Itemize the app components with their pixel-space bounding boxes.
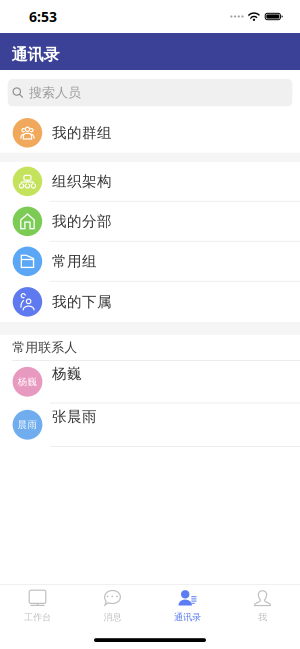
staticText: 常用联系人 xyxy=(12,339,77,356)
button[interactable]: 晨雨 xyxy=(0,403,300,446)
button[interactable]: 我的分部 xyxy=(0,202,300,241)
staticText: 通讯录 xyxy=(11,45,59,65)
button[interactable]: 杨巍 xyxy=(0,361,300,402)
button[interactable]: 我的下属 xyxy=(0,282,300,322)
button[interactable]: 我的群组 xyxy=(0,113,300,153)
staticText: 工作台 xyxy=(24,611,51,623)
staticText: 通讯录 xyxy=(174,611,201,623)
staticText: 消息 xyxy=(103,611,121,623)
button[interactable]: 搜索人员 xyxy=(0,70,300,106)
button[interactable]: 工作台 xyxy=(0,585,75,630)
staticText: 我的下属 xyxy=(52,293,112,311)
staticText: 我的分部 xyxy=(52,212,112,230)
button[interactable]: 组织架构 xyxy=(0,162,300,201)
button[interactable]: 通讯录 xyxy=(150,585,225,630)
staticText: 我的群组 xyxy=(52,124,112,142)
button[interactable]: 消息 xyxy=(75,585,150,630)
staticText: 常用组 xyxy=(52,252,97,270)
staticText: 6:53 xyxy=(29,7,57,26)
staticText: 我 xyxy=(258,611,267,623)
staticText: 杨巍 xyxy=(52,365,82,383)
staticText: 杨巍 xyxy=(17,376,37,388)
staticText: 搜索人员 xyxy=(29,85,81,101)
button[interactable]: 我 xyxy=(225,585,300,630)
staticText: 晨雨 xyxy=(17,419,37,431)
staticText: 张晨雨 xyxy=(52,408,97,426)
button[interactable]: 常用组 xyxy=(0,242,300,281)
staticText: 组织架构 xyxy=(52,172,112,190)
